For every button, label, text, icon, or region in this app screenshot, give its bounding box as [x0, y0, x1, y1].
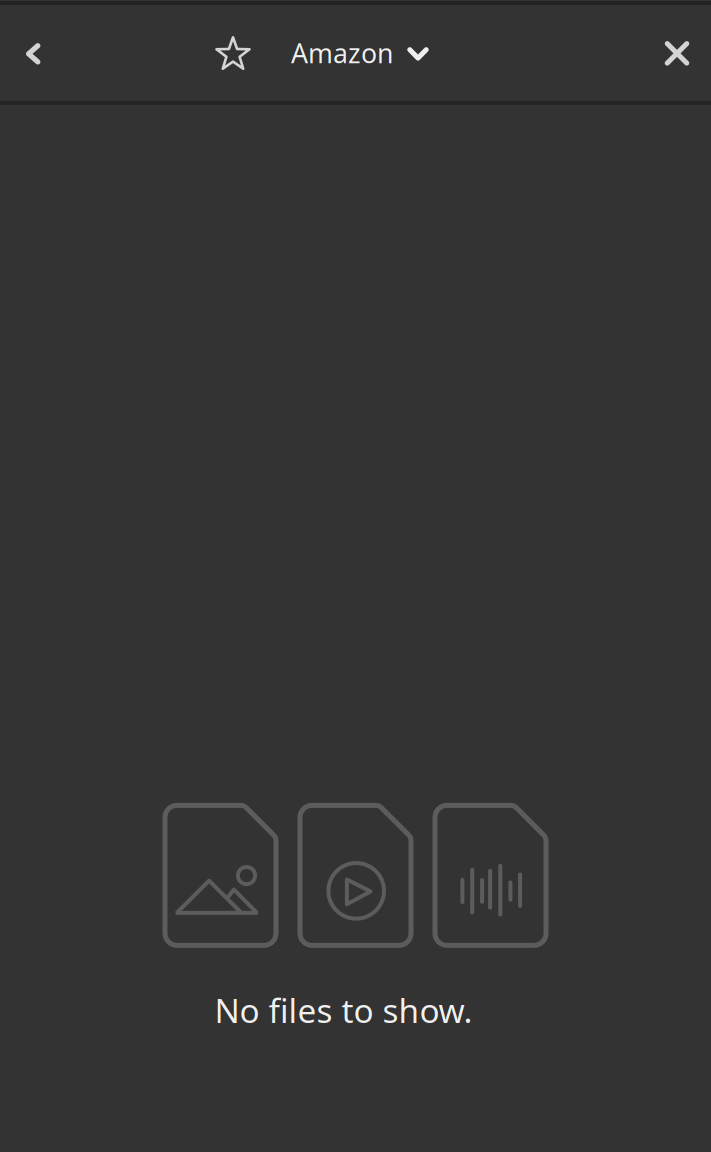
staticText: Amazon	[291, 35, 393, 71]
button[interactable]: Amazon	[279, 5, 441, 101]
button[interactable]: Favorite	[205, 5, 261, 101]
button[interactable]: Close	[643, 5, 711, 101]
staticText: No files to show.	[214, 988, 472, 1032]
button[interactable]: Back	[0, 5, 66, 101]
